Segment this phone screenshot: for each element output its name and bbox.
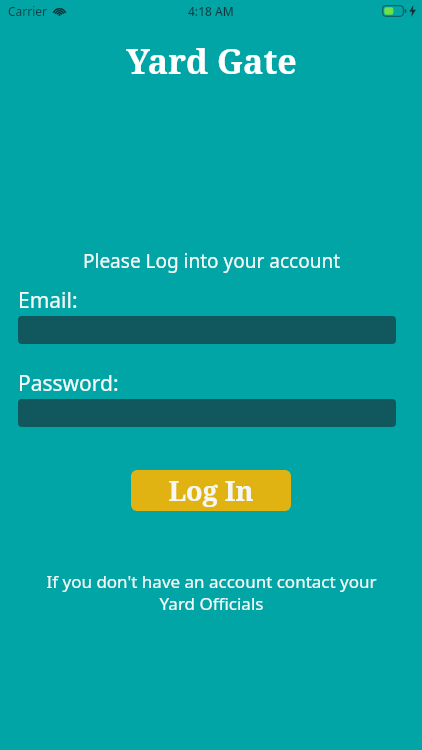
button[interactable]: Log In xyxy=(131,470,291,511)
staticText: Yard Gate xyxy=(126,38,297,84)
staticText: Carrier xyxy=(8,3,48,19)
staticText: Password: xyxy=(18,369,119,398)
staticText: Email: xyxy=(18,286,78,315)
staticText: If you don't have an account contact you… xyxy=(46,570,377,615)
staticText: Log In xyxy=(168,472,254,509)
staticText: Please Log into your account xyxy=(83,248,340,274)
staticText: 4:18 AM xyxy=(188,3,234,19)
